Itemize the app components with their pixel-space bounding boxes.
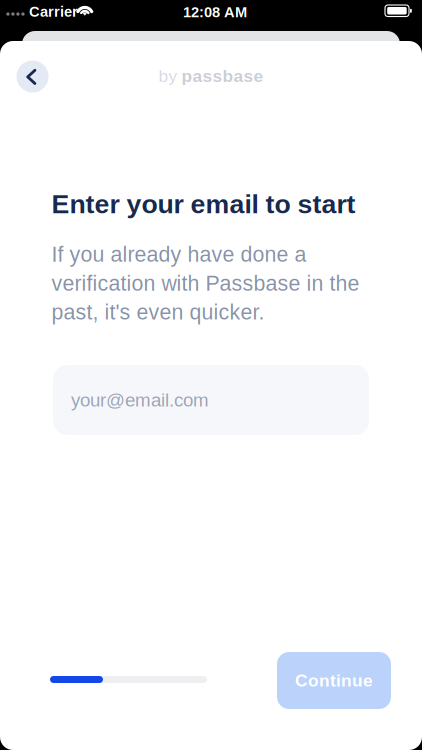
button[interactable]: Back — [16, 60, 48, 92]
staticText: 12:08 AM — [183, 4, 247, 20]
staticText: Carrier — [29, 3, 78, 20]
staticText: your@email.com — [71, 390, 209, 410]
button[interactable]: Continue — [277, 652, 391, 709]
staticText: Enter your email to start — [51, 189, 355, 219]
staticText: Continue — [295, 671, 373, 690]
staticText: If you already have done a verification … — [51, 242, 359, 324]
staticText: passbase — [181, 66, 263, 86]
staticText: by — [158, 66, 177, 86]
